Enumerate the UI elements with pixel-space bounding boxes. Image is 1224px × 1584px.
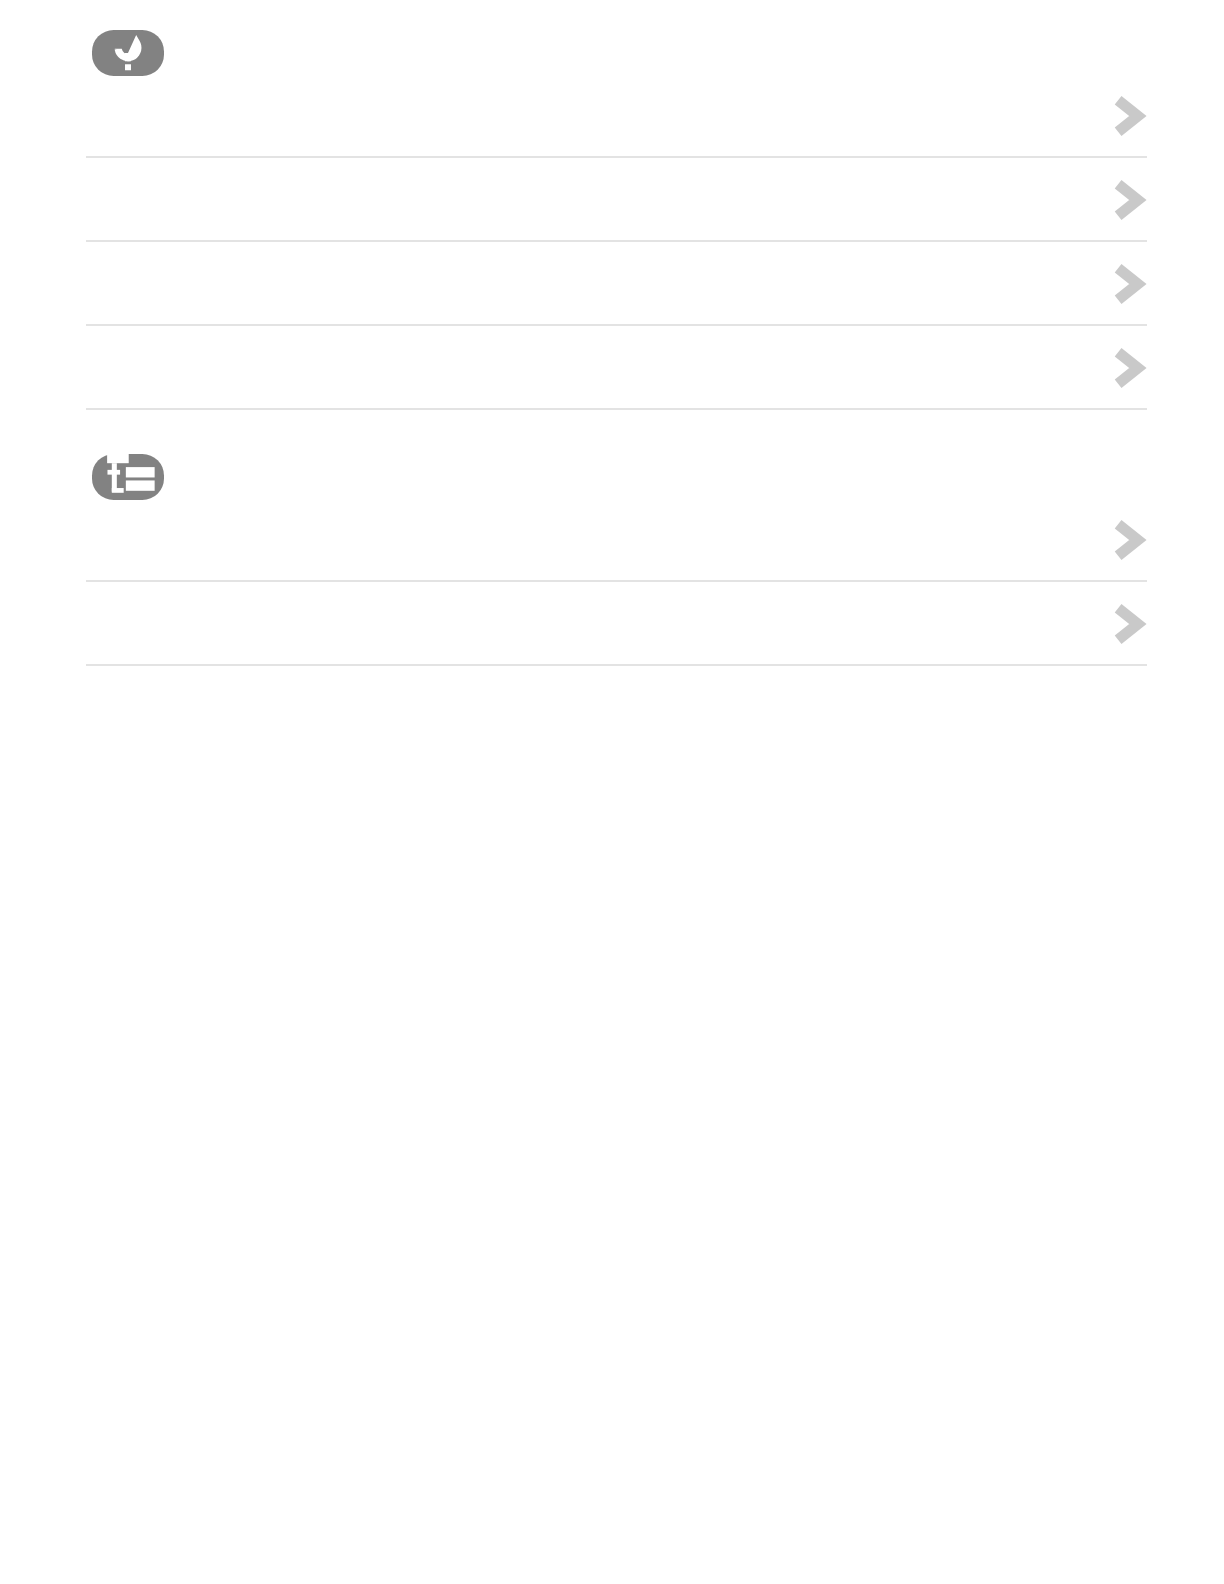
button[interactable]: Help item 2 <box>0 158 1224 242</box>
button[interactable]: Info item 1 <box>0 498 1224 582</box>
button[interactable]: Help item 3 <box>0 242 1224 326</box>
button[interactable]: Info item 2 <box>0 582 1224 666</box>
button[interactable]: Help item 4 <box>0 326 1224 410</box>
button[interactable]: Help item 1 <box>0 74 1224 158</box>
